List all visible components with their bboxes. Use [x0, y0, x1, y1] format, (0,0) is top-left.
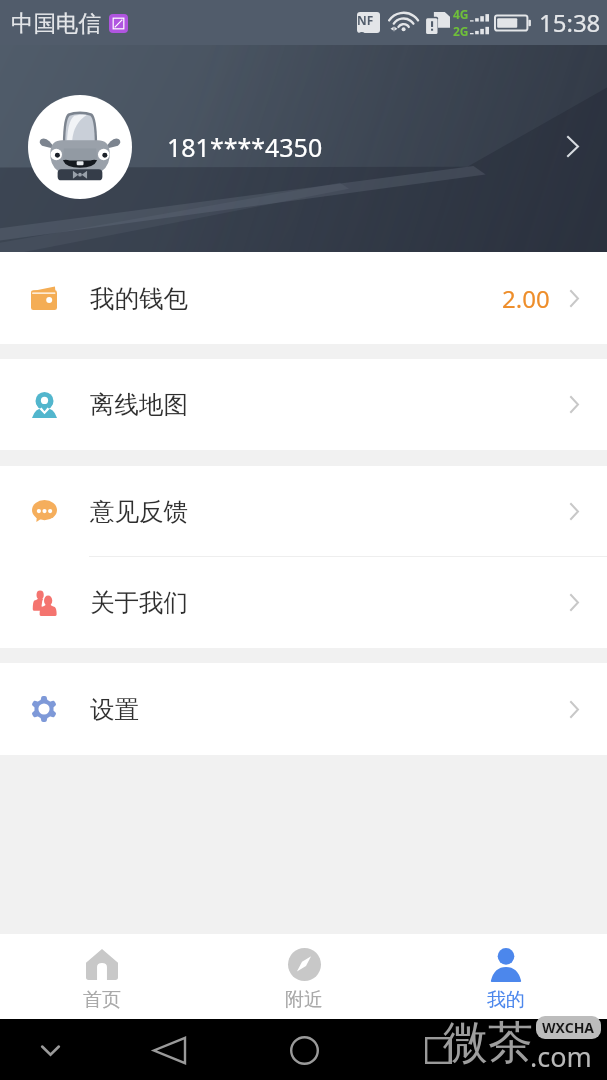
staticText: 附近	[285, 988, 323, 1012]
button[interactable]: Home	[281, 1027, 327, 1073]
staticText: 中国电信	[11, 9, 101, 37]
button[interactable]: 附近	[203, 934, 405, 1019]
button[interactable]: 我的	[405, 934, 607, 1019]
staticText: 我的钱包	[90, 283, 188, 314]
staticText: 181****4350	[167, 130, 323, 164]
staticText: 设置	[90, 694, 139, 725]
staticText: 2.00	[502, 282, 550, 315]
button[interactable]: Recent apps	[415, 1027, 461, 1073]
button[interactable]: Back	[146, 1027, 192, 1073]
staticText: 2G	[453, 23, 469, 39]
staticText: 首页	[83, 988, 121, 1012]
staticText: 4G	[453, 6, 469, 22]
button[interactable]: 首页	[0, 934, 203, 1019]
staticText: 离线地图	[90, 389, 188, 420]
staticText: NFC	[357, 12, 380, 33]
button[interactable]: Hide navigation bar	[33, 1038, 67, 1062]
staticText: 15:38	[539, 6, 601, 39]
button[interactable]: 我的钱包	[0, 252, 607, 344]
button[interactable]: 设置	[0, 663, 607, 755]
button[interactable]: 意见反馈	[0, 466, 607, 557]
staticText: .com	[530, 1038, 592, 1075]
staticText: WXCHA	[542, 1018, 595, 1037]
staticText: 我的	[487, 988, 525, 1012]
staticText: 关于我们	[90, 587, 188, 618]
staticText: 意见反馈	[90, 496, 188, 527]
button[interactable]: 关于我们	[0, 557, 607, 648]
button[interactable]: 离线地图	[0, 359, 607, 450]
staticText: 微茶	[443, 1015, 533, 1072]
